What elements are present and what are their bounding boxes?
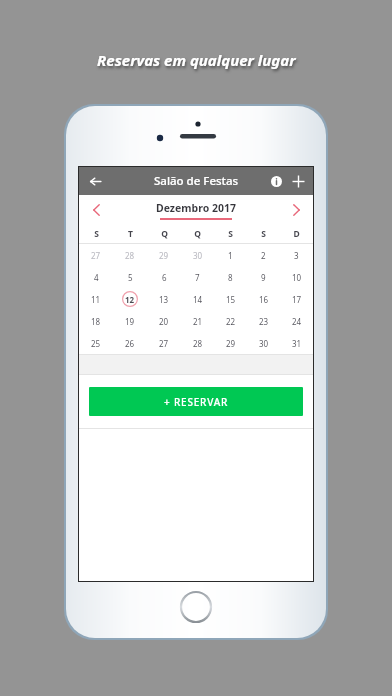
staticText: S <box>261 228 266 240</box>
button[interactable]: 1 <box>214 244 247 266</box>
button[interactable]: Add <box>287 170 309 192</box>
staticText: 25 <box>91 338 101 349</box>
button[interactable]: 4 <box>79 266 113 288</box>
button[interactable]: Back <box>83 169 107 193</box>
button[interactable]: 7 <box>181 266 214 288</box>
button[interactable]: 25 <box>79 332 113 354</box>
button[interactable]: 10 <box>280 266 313 288</box>
button[interactable]: 15 <box>214 288 247 310</box>
button[interactable]: 9 <box>247 266 280 288</box>
button[interactable]: Info <box>265 170 287 192</box>
button[interactable]: + RESERVAR <box>89 387 303 416</box>
staticText: T <box>128 228 133 240</box>
staticText: 31 <box>292 338 302 349</box>
button[interactable]: 3 <box>280 244 313 266</box>
button[interactable]: 28 <box>113 244 147 266</box>
staticText: 9 <box>261 272 266 283</box>
staticText: D <box>293 228 300 240</box>
staticText: 24 <box>292 316 302 327</box>
staticText: 11 <box>91 294 101 305</box>
staticText: 23 <box>259 316 269 327</box>
staticText: 10 <box>292 272 302 283</box>
staticText: Salão de Festas <box>154 173 239 189</box>
staticText: 28 <box>125 250 135 261</box>
staticText: 29 <box>226 338 236 349</box>
button[interactable]: 12 <box>113 288 147 310</box>
staticText: + RESERVAR <box>164 395 229 409</box>
button[interactable]: 5 <box>113 266 147 288</box>
staticText: 16 <box>259 294 269 305</box>
staticText: 30 <box>259 338 269 349</box>
staticText: Dezembro 2017 <box>156 201 236 215</box>
button[interactable]: 30 <box>181 244 214 266</box>
staticText: 6 <box>162 272 167 283</box>
staticText: 18 <box>91 316 101 327</box>
staticText: Reservas em qualquer lugar <box>97 50 296 70</box>
button[interactable]: 30 <box>247 332 280 354</box>
button[interactable]: Next month <box>285 199 307 221</box>
staticText: 30 <box>193 250 203 261</box>
button[interactable]: 21 <box>181 310 214 332</box>
button[interactable]: 24 <box>280 310 313 332</box>
staticText: 8 <box>228 272 233 283</box>
button[interactable]: 27 <box>147 332 181 354</box>
staticText: 3 <box>294 250 299 261</box>
staticText: 13 <box>159 294 169 305</box>
staticText: 1 <box>228 250 233 261</box>
button[interactable]: Previous month <box>85 199 107 221</box>
button[interactable]: 13 <box>147 288 181 310</box>
staticText: 22 <box>226 316 236 327</box>
staticText: S <box>228 228 233 240</box>
button[interactable]: 2 <box>247 244 280 266</box>
staticText: 21 <box>193 316 203 327</box>
staticText: 15 <box>226 294 236 305</box>
button[interactable]: 18 <box>79 310 113 332</box>
staticText: Q <box>194 228 201 240</box>
button[interactable]: 17 <box>280 288 313 310</box>
button[interactable]: 27 <box>79 244 113 266</box>
staticText: 19 <box>125 316 135 327</box>
staticText: 12 <box>125 294 135 305</box>
staticText: 17 <box>292 294 302 305</box>
staticText: 5 <box>128 272 133 283</box>
staticText: 29 <box>159 250 169 261</box>
button[interactable]: 26 <box>113 332 147 354</box>
staticText: 4 <box>94 272 99 283</box>
staticText: 28 <box>193 338 203 349</box>
button[interactable]: 19 <box>113 310 147 332</box>
button[interactable]: 22 <box>214 310 247 332</box>
staticText: 27 <box>91 250 101 261</box>
staticText: 20 <box>159 316 169 327</box>
button[interactable]: 29 <box>214 332 247 354</box>
button[interactable]: 14 <box>181 288 214 310</box>
button[interactable]: 28 <box>181 332 214 354</box>
button[interactable]: 29 <box>147 244 181 266</box>
staticText: 7 <box>195 272 200 283</box>
button[interactable]: 23 <box>247 310 280 332</box>
staticText: Q <box>161 228 168 240</box>
button[interactable]: 6 <box>147 266 181 288</box>
staticText: 2 <box>261 250 266 261</box>
button[interactable]: 16 <box>247 288 280 310</box>
staticText: 27 <box>159 338 169 349</box>
button[interactable]: 11 <box>79 288 113 310</box>
button[interactable]: 20 <box>147 310 181 332</box>
button[interactable]: 31 <box>280 332 313 354</box>
button[interactable]: 8 <box>214 266 247 288</box>
staticText: 14 <box>193 294 203 305</box>
staticText: S <box>94 228 99 240</box>
staticText: 26 <box>125 338 135 349</box>
